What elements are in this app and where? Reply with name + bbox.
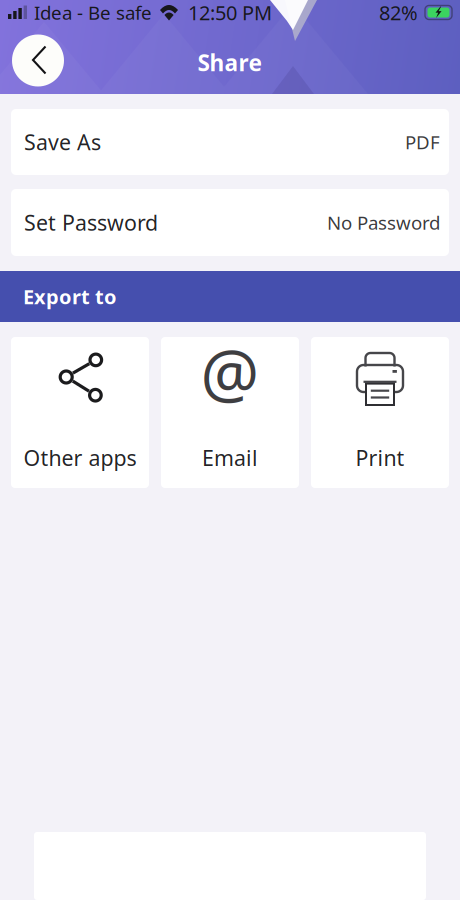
staticText: @ xyxy=(200,329,259,415)
button[interactable]: @ xyxy=(161,337,299,488)
button[interactable]: Print xyxy=(311,337,449,488)
button[interactable]: Back xyxy=(10,30,66,88)
staticText: Save As xyxy=(24,128,101,156)
staticText: 82% xyxy=(379,0,418,26)
staticText: Share xyxy=(197,47,262,77)
button[interactable]: Save As xyxy=(11,109,449,175)
staticText: PDF xyxy=(405,130,440,154)
staticText: Other apps xyxy=(23,444,136,472)
staticText: Export to xyxy=(23,283,117,310)
staticText: Set Password xyxy=(24,208,158,237)
button[interactable]: Set Password xyxy=(11,189,449,256)
staticText: Email xyxy=(202,444,258,472)
staticText: Idea - Be safe xyxy=(34,0,152,25)
staticText: Print xyxy=(355,444,404,472)
button[interactable]: Other apps xyxy=(11,337,149,488)
staticText: No Password xyxy=(327,210,440,235)
staticText: 12:50 PM xyxy=(188,0,272,26)
